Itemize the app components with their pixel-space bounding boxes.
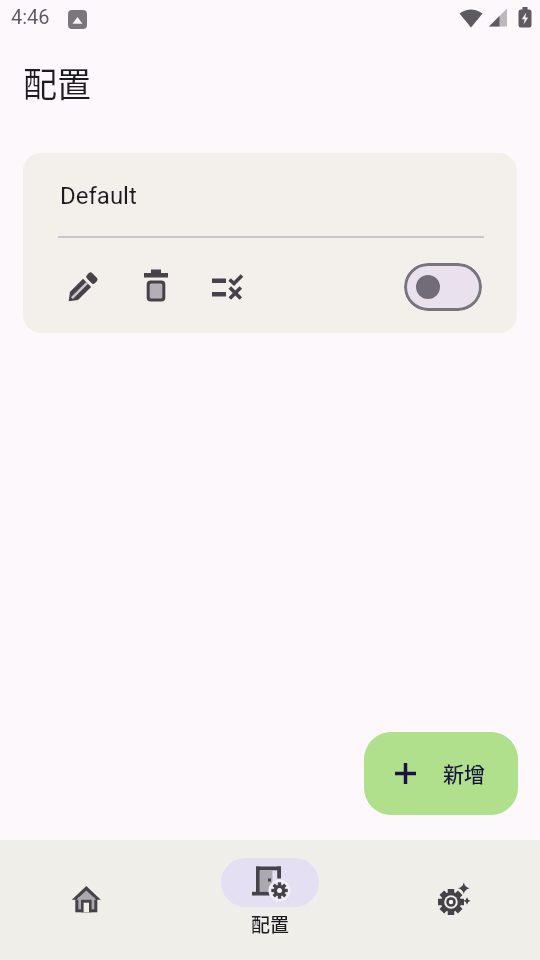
staticText: 新增 — [443, 758, 485, 788]
button[interactable] — [132, 263, 180, 311]
button[interactable] — [202, 263, 250, 311]
staticText: 配置 — [251, 910, 290, 938]
button[interactable] — [0, 840, 180, 960]
button[interactable] — [180, 840, 360, 960]
button[interactable] — [364, 732, 518, 815]
staticText: 配置 — [23, 58, 91, 107]
button[interactable] — [58, 263, 106, 311]
button[interactable] — [360, 840, 540, 960]
staticText: Default — [60, 182, 137, 210]
button[interactable] — [404, 263, 482, 311]
staticText: 4:46 — [11, 5, 50, 28]
